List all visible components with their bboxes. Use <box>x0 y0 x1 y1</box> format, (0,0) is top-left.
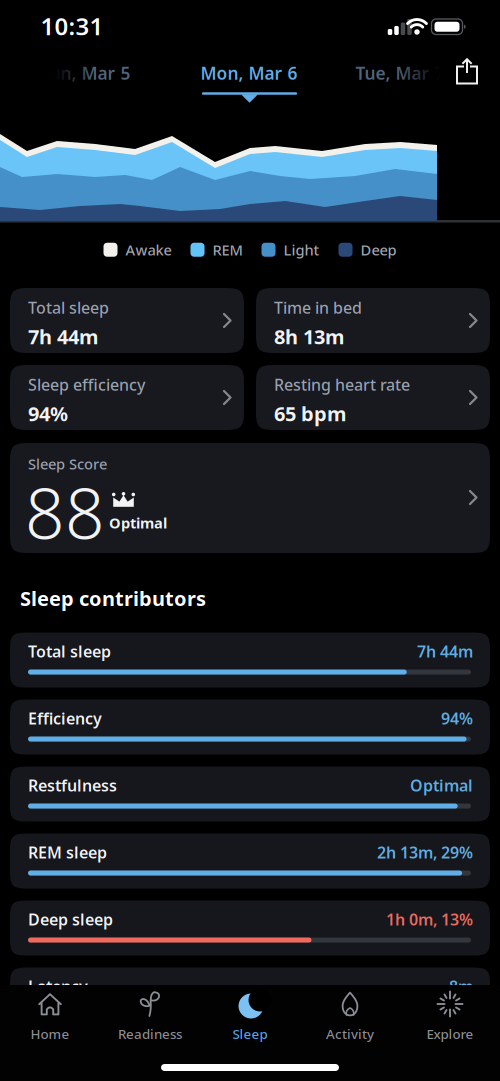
button[interactable]: Home <box>0 990 100 1042</box>
staticText: Mon, Mar 6 <box>200 61 297 84</box>
button[interactable]: Total sleep <box>10 288 244 353</box>
staticText: 8h 13m <box>274 323 345 350</box>
staticText: Sleep <box>232 1025 267 1043</box>
staticText: Tue, Mar 7 <box>355 61 444 84</box>
staticText: Sleep Score <box>28 454 107 473</box>
button[interactable]: Explore <box>400 990 500 1042</box>
staticText: REM <box>212 240 242 259</box>
button[interactable]: Total sleep <box>10 633 490 688</box>
staticText: Deep <box>360 240 396 259</box>
button[interactable]: Sleep efficiency <box>10 365 244 430</box>
button[interactable]: Resting heart rate <box>256 365 490 430</box>
staticText: Readiness <box>118 1025 182 1043</box>
button[interactable]: Latency <box>10 968 490 1023</box>
staticText: 94% <box>441 708 473 729</box>
button[interactable]: Sun, Mar 5 <box>39 61 130 84</box>
staticText: Time in bed <box>274 297 362 318</box>
staticText: Resting heart rate <box>274 374 410 395</box>
staticText: Latency <box>28 976 88 997</box>
staticText: Total sleep <box>28 641 111 662</box>
staticText: Optimal <box>109 513 167 532</box>
staticText: 7h 44m <box>417 641 473 662</box>
staticText: 94% <box>28 400 68 427</box>
staticText: 65 bpm <box>274 400 347 427</box>
button[interactable]: Readiness <box>100 990 200 1042</box>
staticText: Sun, Mar 5 <box>39 61 130 84</box>
button[interactable]: Deep sleep <box>10 901 490 956</box>
staticText: Awake <box>125 240 171 259</box>
staticText: Light <box>283 240 319 259</box>
staticText: Total sleep <box>28 297 109 318</box>
button[interactable]: REM sleep <box>10 834 490 889</box>
staticText: Activity <box>326 1025 374 1043</box>
staticText: 88 <box>25 466 105 558</box>
button[interactable]: Mon, Mar 6 <box>200 61 297 84</box>
staticText: Sleep contributors <box>20 585 206 612</box>
button[interactable]: Sleep Score <box>10 443 490 553</box>
staticText: 2h 13m, 29% <box>377 842 473 863</box>
button[interactable]: Tue, Mar 7 <box>355 61 444 84</box>
staticText: Optimal <box>410 775 473 796</box>
staticText: Home <box>30 1025 69 1043</box>
staticText: Deep sleep <box>28 909 113 930</box>
button[interactable]: Share <box>456 58 478 85</box>
button[interactable]: Sleep <box>200 990 300 1042</box>
button[interactable]: Efficiency <box>10 700 490 755</box>
button[interactable]: Activity <box>300 990 400 1042</box>
staticText: Efficiency <box>28 708 102 729</box>
staticText: Restfulness <box>28 775 117 796</box>
staticText: 7h 44m <box>28 323 99 350</box>
staticText: Explore <box>426 1025 473 1043</box>
staticText: 8m <box>449 976 473 997</box>
staticText: 10:31 <box>40 10 103 42</box>
staticText: 1h 0m, 13% <box>386 909 473 930</box>
button[interactable]: Time in bed <box>256 288 490 353</box>
button[interactable]: Restfulness <box>10 767 490 822</box>
staticText: REM sleep <box>28 842 107 863</box>
staticText: Sleep efficiency <box>28 374 145 395</box>
